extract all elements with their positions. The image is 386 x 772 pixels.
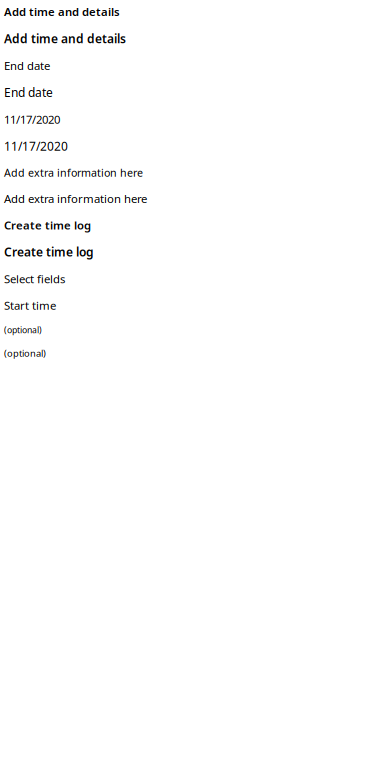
staticText: (optional) <box>4 324 42 336</box>
staticText: Start time <box>4 297 56 313</box>
staticText: Add time and details <box>4 30 126 47</box>
staticText: End date <box>4 84 53 100</box>
staticText: 11/17/2020 <box>4 112 60 127</box>
staticText: Add extra information here <box>4 165 143 180</box>
staticText: Add extra information here <box>4 191 147 206</box>
staticText: 11/17/2020 <box>4 138 68 154</box>
staticText: Create time log <box>4 244 94 260</box>
staticText: Create time log <box>4 217 91 233</box>
staticText: (optional) <box>4 347 46 359</box>
staticText: Add time and details <box>4 4 120 19</box>
staticText: End date <box>4 58 50 73</box>
staticText: Select fields <box>4 271 65 286</box>
